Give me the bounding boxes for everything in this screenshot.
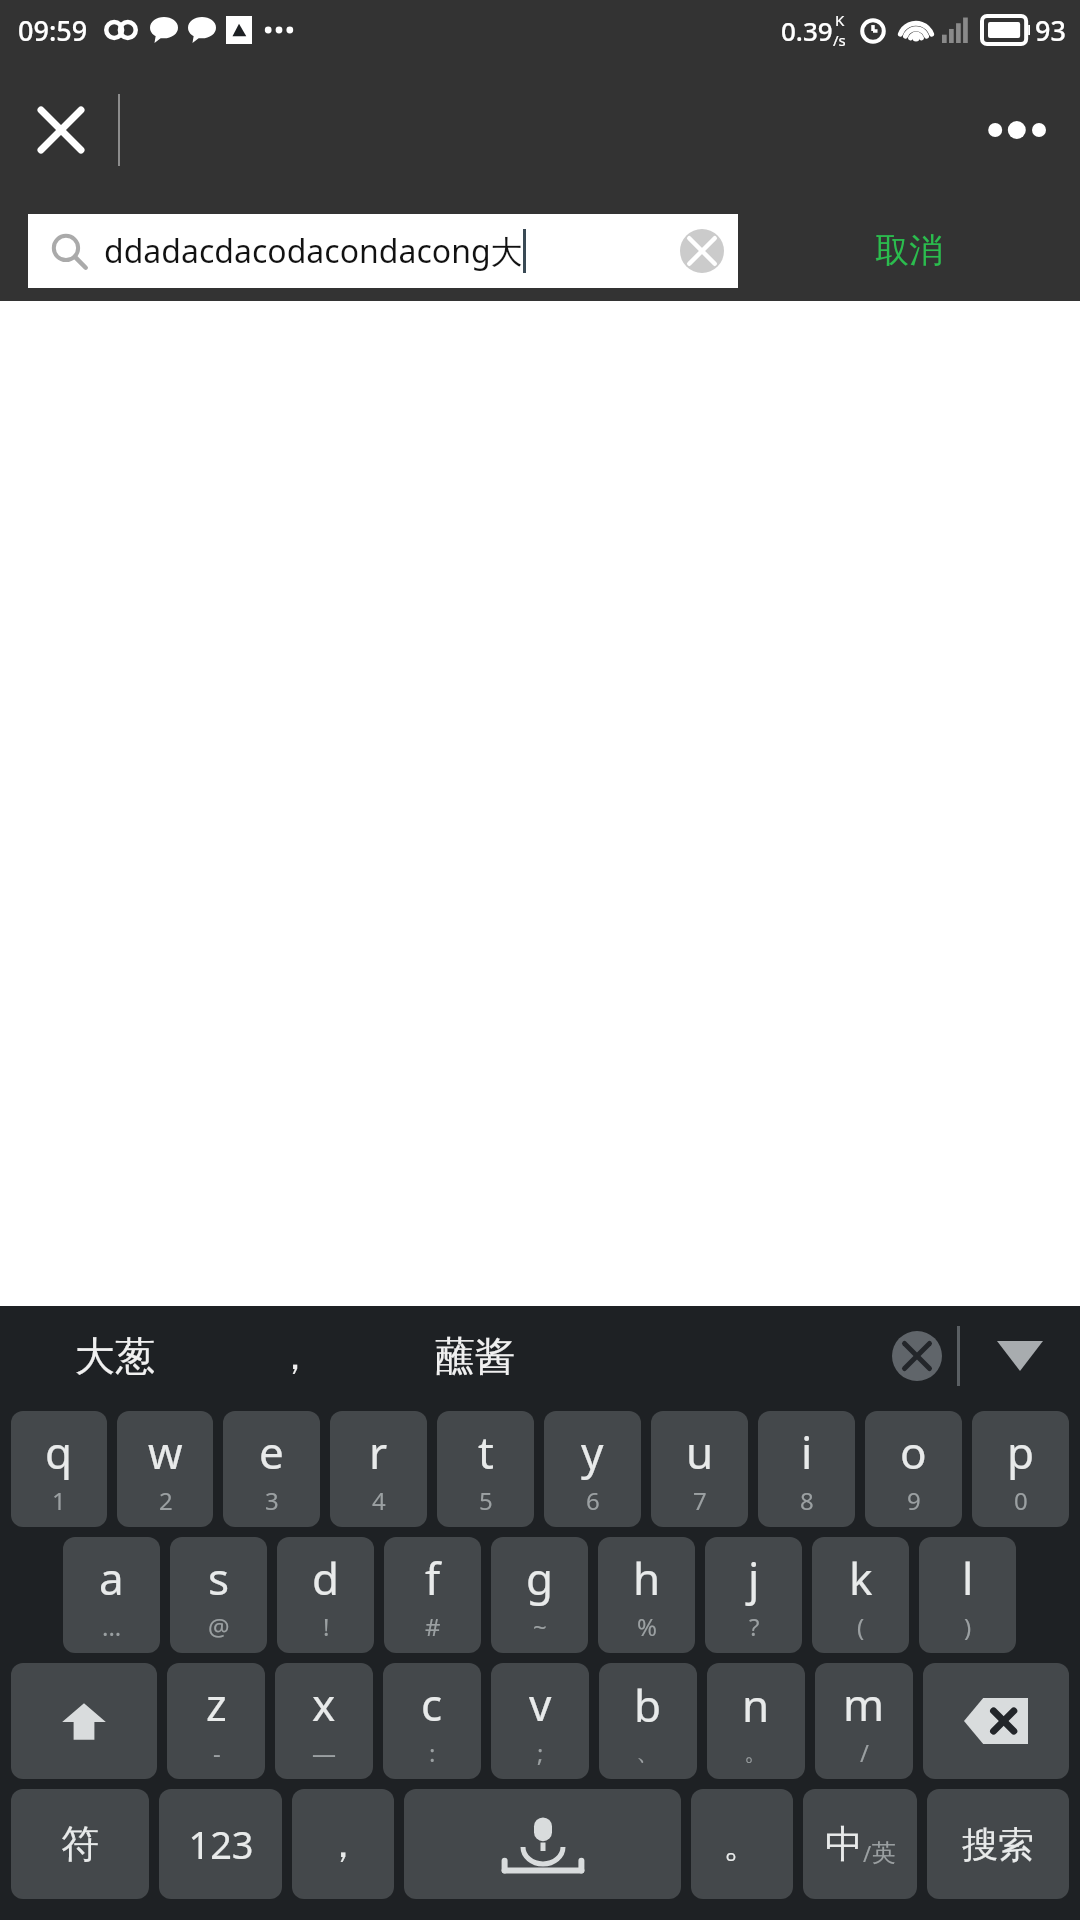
staticText: v: [529, 1674, 552, 1734]
button[interactable]: p: [972, 1411, 1069, 1527]
staticText: g: [526, 1548, 554, 1608]
staticText: x: [312, 1674, 336, 1734]
staticText: ，: [277, 1334, 313, 1379]
button[interactable]: Delete suggestions: [877, 1316, 957, 1396]
staticText: 5: [479, 1484, 493, 1517]
button[interactable]: Clear text: [674, 223, 730, 279]
button[interactable]: e: [223, 1411, 320, 1527]
staticText: 中: [825, 1820, 863, 1868]
button[interactable]: n: [707, 1663, 805, 1779]
staticText: (: [857, 1610, 865, 1643]
staticText: j: [748, 1548, 760, 1608]
staticText: @: [208, 1610, 230, 1643]
staticText: ?: [749, 1610, 760, 1643]
button[interactable]: 。: [691, 1789, 793, 1899]
button[interactable]: w: [117, 1411, 213, 1527]
staticText: k: [849, 1548, 873, 1608]
button[interactable]: Backspace: [923, 1663, 1069, 1779]
staticText: 9: [907, 1484, 921, 1517]
staticText: 3: [265, 1484, 279, 1517]
button[interactable]: k: [812, 1537, 909, 1653]
staticText: %: [637, 1610, 657, 1643]
button[interactable]: o: [865, 1411, 962, 1527]
staticText: b: [634, 1675, 662, 1735]
button[interactable]: b: [599, 1663, 697, 1779]
staticText: 符: [61, 1820, 99, 1868]
button[interactable]: More options: [978, 100, 1058, 160]
staticText: p: [1007, 1422, 1035, 1482]
staticText: d: [312, 1548, 340, 1608]
staticText: 搜索: [962, 1822, 1034, 1867]
staticText: 。: [723, 1820, 761, 1868]
staticText: ): [964, 1610, 972, 1643]
staticText: 、: [636, 1737, 660, 1767]
button[interactable]: q: [11, 1411, 107, 1527]
staticText: i: [801, 1422, 813, 1482]
staticText: 6: [586, 1484, 600, 1517]
button[interactable]: Switch Chinese English: [803, 1789, 917, 1899]
button[interactable]: y: [544, 1411, 641, 1527]
button[interactable]: i: [758, 1411, 855, 1527]
staticText: 1: [52, 1484, 66, 1517]
staticText: 0: [1014, 1484, 1028, 1517]
staticText: /: [863, 1838, 872, 1868]
button[interactable]: u: [651, 1411, 748, 1527]
staticText: 英: [872, 1838, 896, 1868]
staticText: /s: [833, 30, 846, 50]
button[interactable]: d: [277, 1537, 374, 1653]
staticText: 大葱: [75, 1331, 155, 1381]
button[interactable]: 蘸酱: [360, 1306, 590, 1406]
button[interactable]: Shift: [11, 1663, 157, 1779]
button[interactable]: 大葱: [0, 1306, 230, 1406]
button[interactable]: r: [330, 1411, 427, 1527]
button[interactable]: t: [437, 1411, 534, 1527]
staticText: 2: [159, 1484, 173, 1517]
button[interactable]: 符: [11, 1789, 149, 1899]
staticText: f: [425, 1548, 441, 1608]
button[interactable]: ddadacdacodacondacong大: [28, 214, 738, 288]
button[interactable]: ，: [292, 1789, 394, 1899]
button[interactable]: c: [383, 1663, 481, 1779]
staticText: l: [962, 1548, 974, 1608]
staticText: 09:59: [18, 12, 88, 49]
staticText: r: [369, 1422, 388, 1482]
button[interactable]: a: [63, 1537, 160, 1653]
button[interactable]: 搜索: [927, 1789, 1069, 1899]
button[interactable]: ，: [230, 1306, 360, 1406]
staticText: e: [259, 1422, 284, 1482]
button[interactable]: x: [275, 1663, 373, 1779]
staticText: ，: [324, 1820, 362, 1868]
staticText: t: [478, 1422, 494, 1482]
button[interactable]: v: [491, 1663, 589, 1779]
button[interactable]: s: [170, 1537, 267, 1653]
button[interactable]: m: [815, 1663, 913, 1779]
staticText: u: [686, 1422, 714, 1482]
button[interactable]: 取消: [738, 200, 1080, 301]
button[interactable]: f: [384, 1537, 481, 1653]
staticText: 取消: [875, 229, 943, 272]
staticText: 4: [372, 1484, 386, 1517]
button[interactable]: z: [167, 1663, 265, 1779]
staticText: z: [206, 1674, 227, 1734]
button[interactable]: Space / voice input: [404, 1789, 681, 1899]
staticText: !: [323, 1610, 330, 1643]
staticText: 0.39: [781, 13, 833, 48]
staticText: /: [860, 1736, 869, 1769]
staticText: —: [312, 1736, 336, 1769]
button[interactable]: Hide keyboard: [960, 1306, 1080, 1406]
button[interactable]: j: [705, 1537, 802, 1653]
button[interactable]: g: [491, 1537, 588, 1653]
staticText: #: [425, 1610, 441, 1643]
button[interactable]: h: [598, 1537, 695, 1653]
staticText: q: [45, 1422, 73, 1482]
staticText: :: [429, 1736, 436, 1769]
button[interactable]: l: [919, 1537, 1016, 1653]
button[interactable]: Close: [26, 95, 96, 165]
staticText: y: [581, 1422, 604, 1482]
button[interactable]: 123: [159, 1789, 282, 1899]
staticText: 7: [693, 1484, 707, 1517]
staticText: -: [213, 1736, 221, 1769]
staticText: o: [900, 1422, 927, 1482]
staticText: ~: [533, 1610, 547, 1643]
staticText: 93: [1035, 12, 1066, 49]
